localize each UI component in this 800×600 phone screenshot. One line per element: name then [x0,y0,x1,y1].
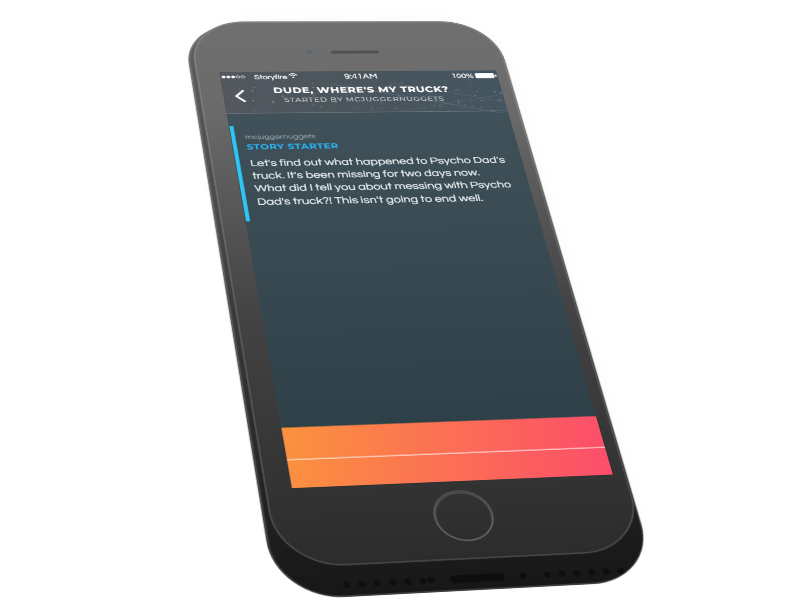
button[interactable]: Storyfire story detail on phone [0,0,800,600]
